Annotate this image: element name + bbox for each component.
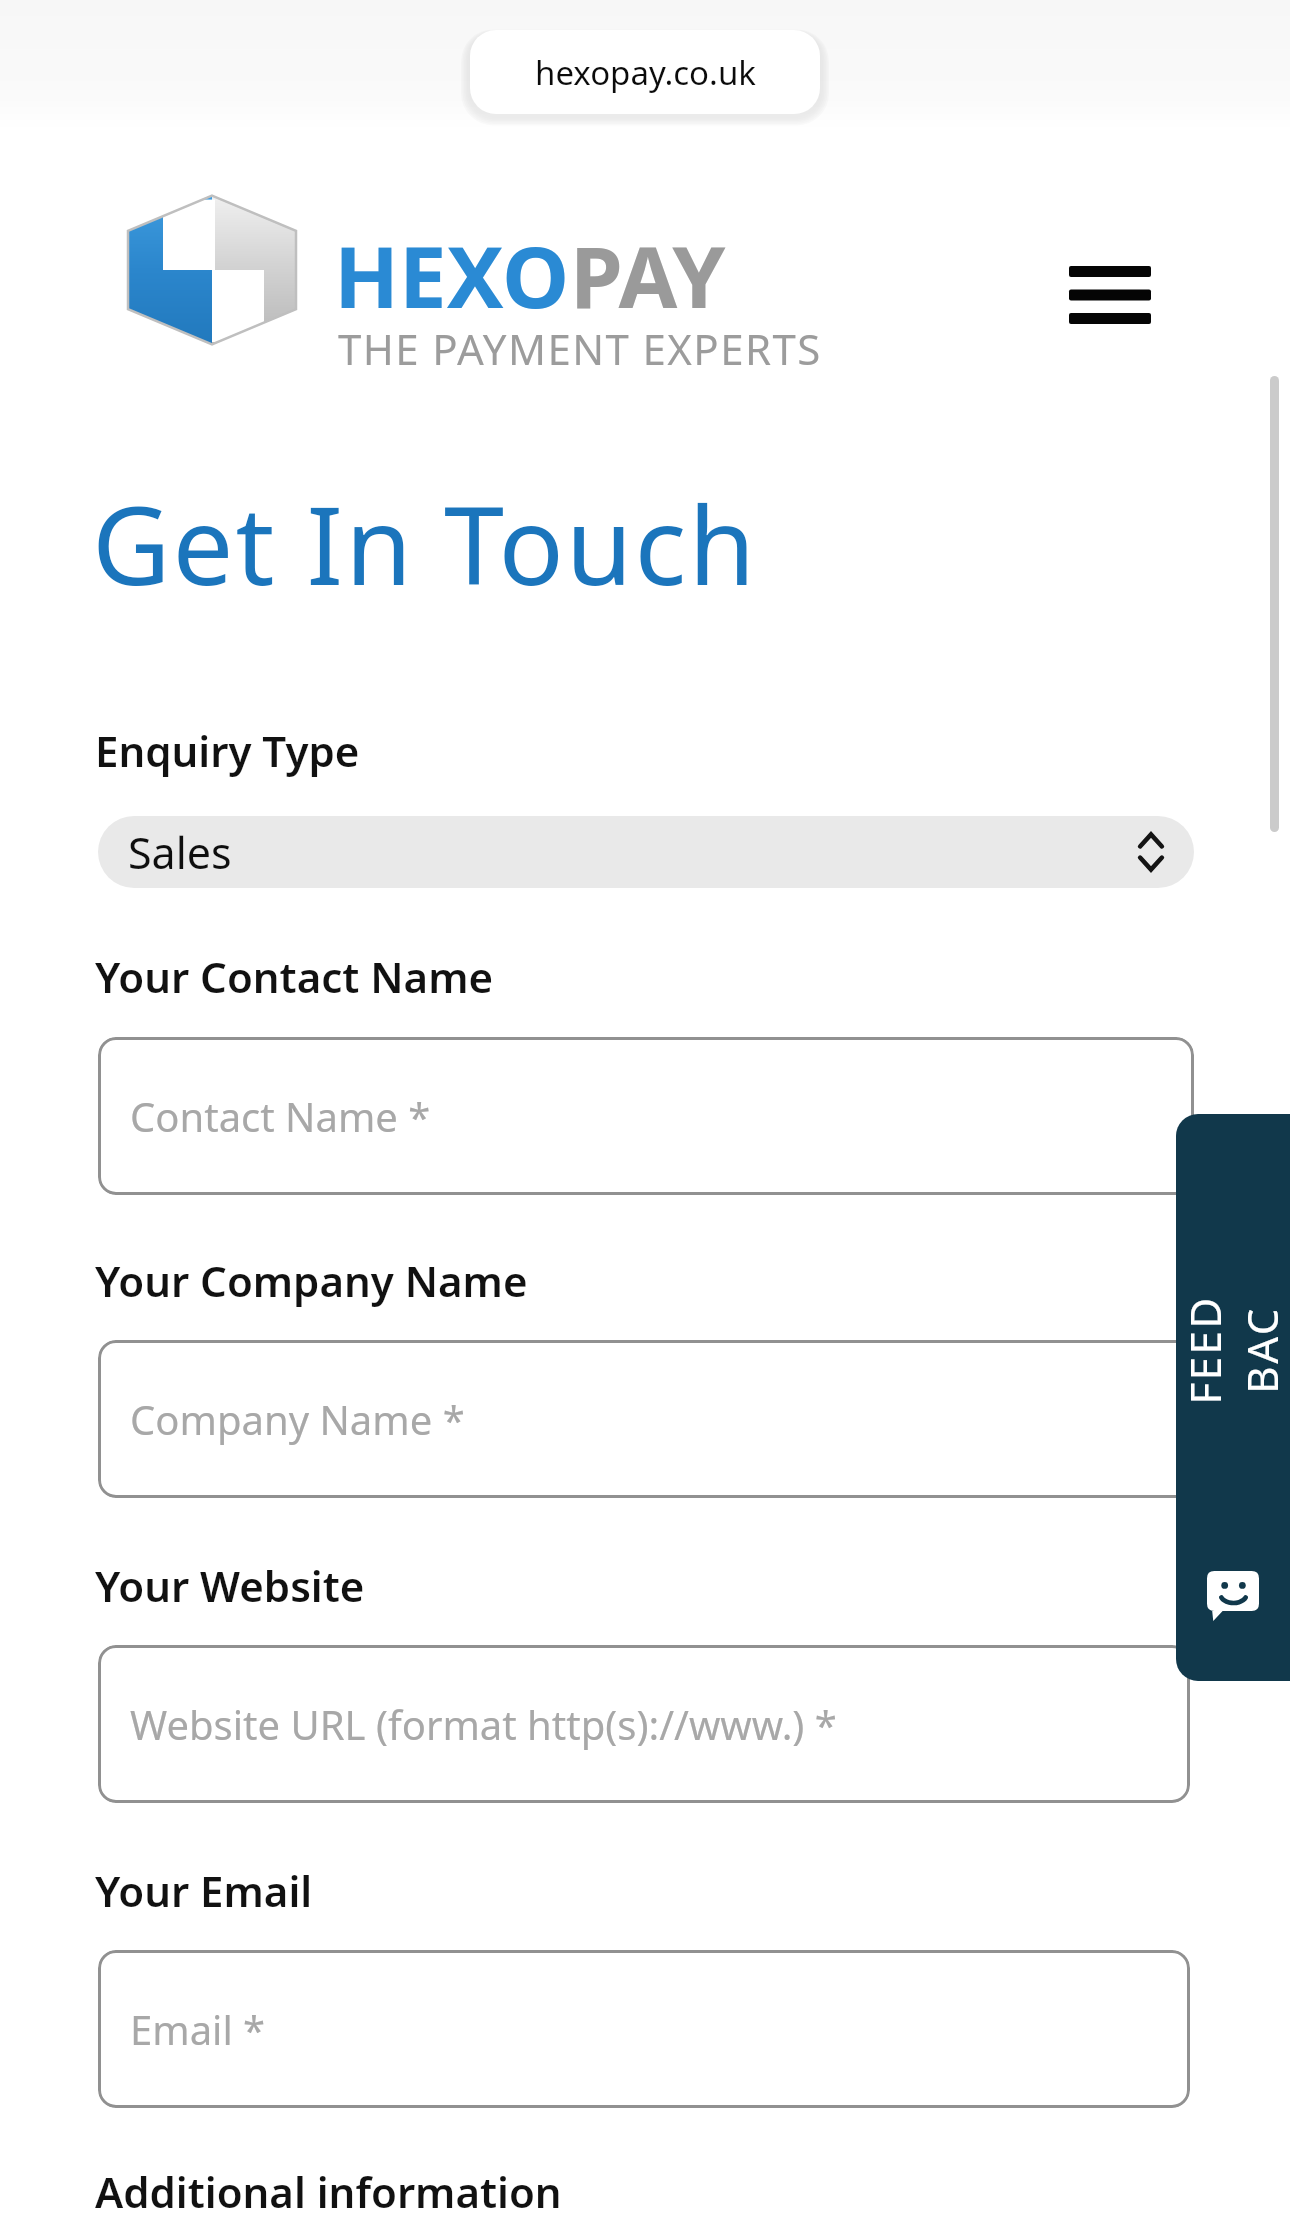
button[interactable]: Open menu	[1055, 245, 1165, 345]
button[interactable]: Company Name *	[98, 1340, 1194, 1498]
button[interactable]: hexopay.co.uk	[470, 30, 820, 114]
button[interactable]: Email *	[98, 1950, 1190, 2108]
button[interactable]: Site feedback	[1176, 1114, 1290, 1681]
staticText: Enquiry Type	[95, 722, 360, 779]
staticText: Your Company Name	[95, 1252, 528, 1309]
staticText: Contact Name *	[130, 1089, 431, 1143]
staticText: Additional information	[95, 2163, 562, 2220]
staticText: Your Contact Name	[95, 948, 494, 1005]
staticText: HEXO	[334, 217, 570, 333]
button[interactable]: Website URL (format http(s)://www.) *	[98, 1645, 1190, 1803]
staticText: Website URL (format http(s)://www.) *	[130, 1697, 837, 1751]
button[interactable]	[112, 190, 312, 350]
staticText: SITE FEEDBACK	[1176, 1293, 1290, 1407]
staticText: Get In Touch	[92, 470, 758, 617]
button[interactable]: Contact Name *	[98, 1037, 1194, 1195]
staticText: hexopay.co.uk	[535, 50, 756, 95]
staticText: Sales	[128, 823, 1138, 882]
staticText: Company Name *	[130, 1392, 465, 1446]
staticText: PAY	[570, 217, 726, 333]
button[interactable]: Sales	[98, 816, 1194, 888]
staticText: Your Email	[95, 1862, 313, 1919]
staticText: Email *	[130, 2002, 266, 2056]
staticText: Your Website	[95, 1557, 365, 1614]
staticText: THE PAYMENT EXPERTS	[338, 320, 822, 377]
